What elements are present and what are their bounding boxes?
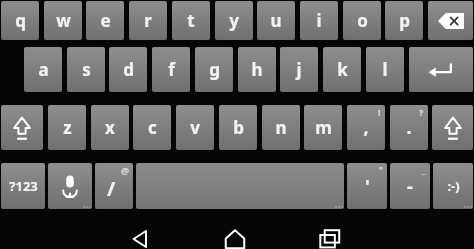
staticText: ?	[419, 106, 424, 118]
staticText: d	[123, 58, 134, 81]
button[interactable]: d	[109, 47, 147, 92]
staticText: z	[63, 116, 72, 139]
staticText: !	[378, 106, 381, 118]
button[interactable]: Shift	[432, 105, 473, 150]
button[interactable]: p	[385, 1, 423, 40]
button[interactable]: Backspace	[428, 1, 473, 40]
button[interactable]: x	[91, 105, 129, 150]
staticText: /	[107, 175, 116, 202]
staticText: :-)	[447, 177, 460, 195]
staticText: '	[365, 174, 370, 199]
staticText: v	[190, 116, 200, 139]
staticText: c	[148, 116, 157, 139]
staticText: @	[121, 164, 130, 176]
button[interactable]: i	[300, 1, 338, 40]
button[interactable]: Period	[390, 105, 428, 150]
staticText: g	[209, 58, 220, 81]
staticText: s	[82, 58, 91, 81]
button[interactable]: Hyphen	[390, 163, 430, 209]
button[interactable]: Back	[118, 229, 162, 249]
button[interactable]: g	[195, 47, 233, 92]
button[interactable]: r	[129, 1, 167, 40]
button[interactable]: Home	[213, 229, 257, 249]
staticText: h	[251, 58, 263, 81]
staticText: y	[229, 9, 239, 32]
staticText: ,	[363, 115, 369, 140]
button[interactable]: q	[1, 1, 39, 40]
staticText: b	[233, 116, 244, 139]
button[interactable]: e	[86, 1, 124, 40]
staticText: _	[422, 164, 426, 175]
button[interactable]: Space	[136, 163, 344, 209]
button[interactable]: u	[257, 1, 295, 40]
staticText: a	[38, 58, 49, 81]
button[interactable]: Recent apps	[308, 229, 352, 249]
staticText: k	[337, 58, 348, 81]
staticText: -	[407, 174, 413, 199]
staticText: r	[144, 9, 152, 32]
button[interactable]: Symbols	[1, 163, 45, 209]
button[interactable]: Apostrophe	[347, 163, 387, 209]
button[interactable]: c	[133, 105, 171, 150]
button[interactable]: t	[172, 1, 210, 40]
button[interactable]: z	[48, 105, 86, 150]
button[interactable]: h	[238, 47, 276, 92]
staticText: l	[382, 58, 388, 81]
staticText: x	[105, 116, 115, 139]
button[interactable]: b	[219, 105, 257, 150]
button[interactable]: w	[44, 1, 82, 40]
staticText: i	[316, 9, 322, 32]
button[interactable]: Comma	[347, 105, 385, 150]
button[interactable]: m	[304, 105, 342, 150]
button[interactable]: Slash	[95, 163, 133, 209]
button[interactable]: o	[343, 1, 381, 40]
button[interactable]: Enter	[409, 47, 473, 92]
button[interactable]: a	[24, 47, 62, 92]
button[interactable]: Emoticons	[433, 163, 473, 209]
staticText: u	[270, 9, 282, 32]
staticText: q	[15, 9, 26, 32]
button[interactable]: Voice input	[48, 163, 92, 209]
button[interactable]: Shift	[1, 105, 43, 150]
button[interactable]: j	[280, 47, 318, 92]
staticText: p	[399, 9, 410, 32]
button[interactable]: l	[366, 47, 404, 92]
staticText: w	[56, 9, 71, 32]
staticText: j	[296, 58, 302, 81]
staticText: m	[315, 116, 332, 139]
staticText: .	[406, 115, 412, 140]
button[interactable]: k	[323, 47, 361, 92]
staticText: f	[168, 58, 175, 81]
staticText: o	[357, 9, 368, 32]
button[interactable]: y	[215, 1, 253, 40]
button[interactable]: v	[176, 105, 214, 150]
staticText: e	[100, 9, 111, 32]
staticText: n	[275, 116, 287, 139]
staticText: "	[379, 164, 383, 175]
button[interactable]: n	[262, 105, 300, 150]
staticText: t	[187, 9, 195, 32]
button[interactable]: f	[152, 47, 190, 92]
button[interactable]: s	[67, 47, 105, 92]
staticText: ?123	[9, 177, 38, 195]
